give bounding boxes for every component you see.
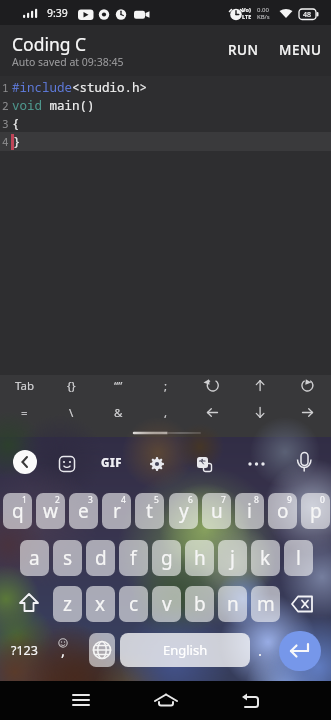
staticText: r — [113, 498, 121, 524]
staticText: { — [12, 115, 20, 131]
button[interactable] — [193, 375, 233, 396]
button[interactable]: & — [98, 402, 138, 423]
button[interactable]: n — [218, 586, 247, 622]
button[interactable]: Tab — [4, 375, 44, 396]
button[interactable]: d — [86, 540, 115, 576]
staticText: g — [161, 545, 173, 571]
button[interactable] — [283, 586, 325, 622]
staticText: d — [95, 545, 107, 571]
staticText: void main() — [12, 97, 95, 113]
button[interactable] — [61, 685, 101, 715]
button[interactable] — [5, 586, 47, 622]
button[interactable]: b — [185, 586, 214, 622]
button[interactable] — [89, 633, 115, 667]
button[interactable] — [231, 685, 271, 715]
button[interactable]: . — [248, 633, 272, 667]
button[interactable]: w — [36, 493, 65, 529]
button[interactable] — [56, 452, 78, 476]
staticText: 2 — [2, 98, 9, 113]
button[interactable] — [240, 375, 280, 396]
button[interactable]: j — [218, 540, 247, 576]
staticText: o — [277, 498, 289, 524]
button[interactable] — [240, 402, 280, 423]
staticText: u — [211, 498, 223, 524]
staticText: GIF — [101, 455, 122, 471]
button[interactable]: {} — [51, 375, 91, 396]
button[interactable]: z — [53, 586, 82, 622]
button[interactable]: y — [169, 493, 198, 529]
staticText: v — [162, 591, 172, 617]
staticText: 6 — [188, 494, 193, 506]
button[interactable]: = — [4, 402, 44, 423]
button[interactable]: , — [146, 402, 186, 423]
staticText: 7 — [221, 494, 226, 506]
staticText: 4 — [2, 134, 9, 149]
button[interactable]: GIF — [96, 452, 126, 474]
staticText: ?123 — [11, 642, 38, 659]
button[interactable]: h — [185, 540, 214, 576]
staticText: MENU — [279, 41, 322, 59]
staticText: Coding C — [12, 32, 87, 55]
staticText: m — [257, 591, 275, 617]
button[interactable]: ?123 — [4, 633, 44, 667]
button[interactable]: u — [202, 493, 231, 529]
staticText: “” — [114, 378, 123, 394]
staticText: 5 — [154, 494, 159, 506]
button[interactable]: p — [301, 493, 330, 529]
button[interactable] — [192, 452, 216, 476]
staticText: h — [194, 545, 206, 571]
button[interactable]: a — [20, 540, 49, 576]
button[interactable]: x — [86, 586, 115, 622]
button[interactable] — [279, 631, 321, 671]
button[interactable]: RUN — [220, 38, 266, 62]
button[interactable]: e — [69, 493, 98, 529]
button[interactable]: MENU — [272, 38, 328, 62]
staticText: LTE — [242, 13, 252, 20]
button[interactable]: ; — [146, 375, 186, 396]
button[interactable]: r — [102, 493, 131, 529]
staticText: 3 — [88, 494, 93, 506]
staticText: t — [146, 498, 153, 524]
button[interactable]: \ — [51, 402, 91, 423]
button[interactable]: k — [251, 540, 280, 576]
staticText: 0.00 — [257, 6, 269, 13]
button[interactable] — [292, 450, 318, 478]
button[interactable] — [243, 452, 269, 476]
button[interactable]: t — [135, 493, 164, 529]
button[interactable] — [145, 452, 169, 476]
button[interactable]: v — [152, 586, 181, 622]
staticText: s — [63, 545, 73, 571]
button[interactable]: i — [235, 493, 264, 529]
staticText: y — [179, 498, 189, 524]
button[interactable]: g — [152, 540, 181, 576]
button[interactable] — [287, 402, 327, 423]
staticText: {} — [67, 378, 76, 394]
staticText: English — [163, 641, 208, 659]
button[interactable]: s — [53, 540, 82, 576]
staticText: l — [296, 545, 301, 571]
button[interactable] — [13, 450, 37, 474]
staticText: z — [63, 591, 72, 617]
staticText: Tab — [15, 378, 34, 394]
staticText: . — [258, 640, 263, 660]
staticText: j — [230, 545, 235, 571]
button[interactable]: l — [284, 540, 313, 576]
button[interactable]: m — [251, 586, 280, 622]
button[interactable]: , — [48, 633, 78, 667]
staticText: a — [29, 545, 40, 571]
button[interactable] — [193, 402, 233, 423]
staticText: q — [12, 498, 24, 524]
button[interactable]: c — [119, 586, 148, 622]
staticText: e — [78, 498, 89, 524]
staticText: 9 — [287, 494, 292, 506]
button[interactable]: o — [268, 493, 297, 529]
button[interactable] — [287, 375, 327, 396]
button[interactable]: q — [3, 493, 32, 529]
staticText: n — [227, 591, 239, 617]
staticText: 4 — [121, 494, 126, 506]
button[interactable] — [146, 685, 186, 715]
button[interactable]: English — [120, 633, 250, 667]
button[interactable]: f — [119, 540, 148, 576]
staticText: 1 — [2, 80, 9, 95]
button[interactable]: “” — [98, 375, 138, 396]
